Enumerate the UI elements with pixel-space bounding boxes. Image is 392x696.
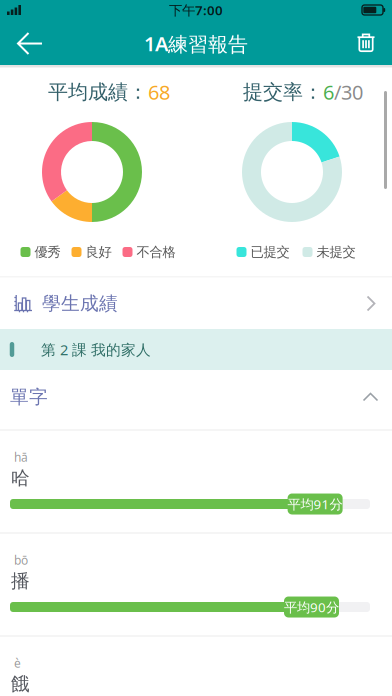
button[interactable]: 學生成績 [0, 277, 392, 329]
button[interactable]: Back [8, 23, 52, 63]
staticText: 平均90分 [284, 598, 339, 616]
staticText: 單字 [10, 385, 48, 408]
staticText: 學生成績 [42, 292, 118, 315]
staticText: è [14, 655, 21, 671]
button[interactable]: Delete [349, 25, 383, 59]
staticText: 第 2 課 我的家人 [41, 340, 151, 359]
staticText: bō [14, 552, 28, 568]
button[interactable]: 單字 [0, 375, 392, 419]
staticText: /30 [334, 79, 363, 105]
staticText: 未提交 [316, 244, 355, 260]
staticText: 已提交 [250, 244, 289, 260]
staticText: 6 [323, 79, 334, 105]
staticText: 優秀 [34, 244, 60, 260]
staticText: 不合格 [136, 244, 175, 260]
staticText: 播 [11, 569, 30, 592]
staticText: 下午7:00 [169, 1, 223, 19]
staticText: 餓 [11, 672, 30, 695]
staticText: 良好 [85, 244, 111, 260]
staticText: 哈 [11, 466, 30, 489]
staticText: 平均成績： [48, 80, 148, 104]
staticText: 68 [148, 79, 170, 105]
staticText: 提交率： [243, 80, 323, 104]
staticText: 平均91分 [288, 495, 343, 513]
staticText: hā [14, 449, 28, 465]
staticText: 1A練習報告 [144, 30, 248, 57]
